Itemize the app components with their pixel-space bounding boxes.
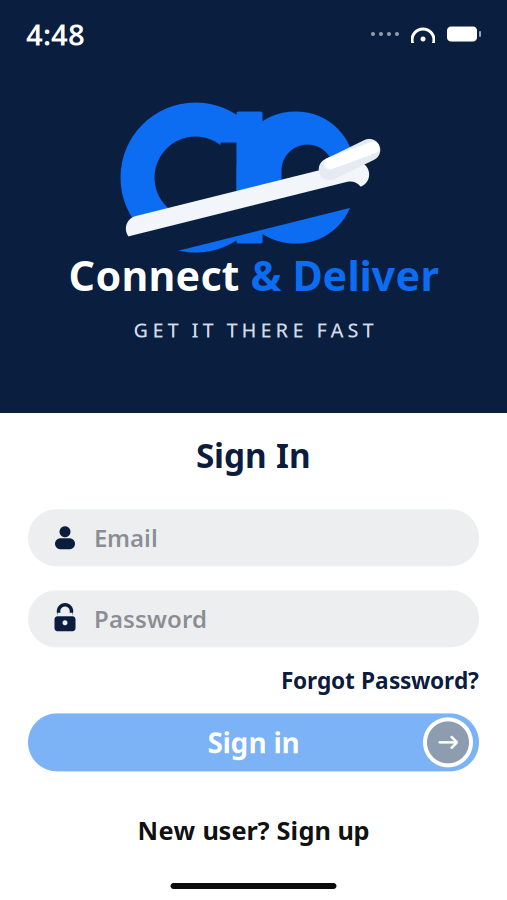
button[interactable]: Sign in: [0, 713, 507, 771]
button[interactable]: New user? Sign up: [137, 813, 369, 847]
button[interactable]: Password: [0, 590, 507, 647]
button[interactable]: Forgot Password?: [281, 665, 479, 695]
staticText: GET IT THERE FAST: [133, 316, 373, 343]
staticText: &: [239, 248, 292, 302]
staticText: Connect: [68, 248, 239, 302]
staticText: Sign In: [196, 433, 311, 477]
button[interactable]: Email: [0, 509, 507, 566]
staticText: Password: [94, 603, 207, 635]
staticText: Deliver: [292, 248, 438, 302]
staticText: Forgot Password?: [281, 665, 479, 695]
staticText: Email: [94, 522, 158, 554]
staticText: New user? Sign up: [137, 813, 369, 847]
staticText: 4:48: [26, 14, 85, 53]
staticText: Sign in: [207, 724, 299, 761]
